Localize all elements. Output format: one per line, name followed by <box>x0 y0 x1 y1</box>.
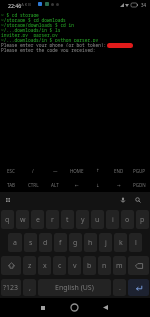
staticText: u <box>95 215 100 225</box>
staticText: / <box>32 168 34 174</box>
button[interactable]: Enter <box>128 279 149 296</box>
button[interactable]: x <box>38 256 51 275</box>
button[interactable]: — <box>44 163 66 178</box>
button[interactable]: n <box>98 256 111 275</box>
staticText: CTRL <box>28 182 39 188</box>
button[interactable]: y <box>76 210 89 229</box>
staticText: ~/...downloads/in $ ls <box>1 27 61 32</box>
staticText: x <box>43 261 47 271</box>
button[interactable]: t <box>61 210 74 229</box>
button[interactable]: Apps <box>3 195 13 205</box>
button[interactable]: ESC <box>0 163 22 178</box>
staticText: l <box>135 238 137 248</box>
staticText: ↑ <box>96 168 100 173</box>
staticText: r <box>51 215 54 225</box>
button[interactable]: ← <box>66 178 87 192</box>
staticText: Please enter the code you received: <box>1 47 96 52</box>
button[interactable]: PGDN <box>129 178 150 192</box>
button[interactable]: z <box>23 256 36 275</box>
button[interactable]: k <box>114 233 127 252</box>
staticText: g <box>73 238 78 248</box>
button[interactable]: END <box>108 163 129 178</box>
button[interactable]: Home <box>59 298 90 317</box>
staticText: h <box>88 238 93 248</box>
button[interactable]: , <box>23 279 36 296</box>
staticText: y <box>81 215 85 225</box>
button[interactable]: f <box>54 233 67 252</box>
staticText: TAB <box>7 182 15 188</box>
button[interactable]: b <box>83 256 96 275</box>
staticText: s <box>29 238 33 248</box>
button[interactable]: Voice input <box>118 195 128 205</box>
button[interactable]: Back <box>90 298 121 317</box>
button[interactable]: PGUP <box>129 163 150 178</box>
button[interactable]: CTRL <box>22 178 44 192</box>
staticText: inviter.py parser.py <box>1 32 58 37</box>
button[interactable]: ?123 <box>1 279 21 296</box>
button[interactable]: m <box>113 256 126 275</box>
staticText: f <box>59 238 62 248</box>
staticText: 34 <box>141 2 147 8</box>
button[interactable]: e <box>31 210 44 229</box>
staticText: t <box>66 215 69 225</box>
button[interactable]: c <box>53 256 66 275</box>
other: Enter <box>135 284 143 292</box>
button[interactable]: Backspace <box>128 256 149 275</box>
staticText: z <box>28 261 32 271</box>
button[interactable]: s <box>24 233 37 252</box>
staticText: v <box>73 261 77 271</box>
staticText: ~/storage $ cd downloads <box>1 17 66 22</box>
button[interactable]: . <box>113 279 126 296</box>
staticText: END <box>114 168 124 174</box>
button[interactable]: ↓ <box>87 178 108 192</box>
staticText: ↓ <box>96 183 100 188</box>
button[interactable]: Recents <box>27 298 59 317</box>
staticText: b <box>87 261 92 271</box>
staticText: ESC <box>7 168 15 174</box>
staticText: j <box>105 238 107 248</box>
button[interactable]: d <box>39 233 52 252</box>
staticText: , <box>29 283 31 293</box>
staticText: . <box>119 283 121 293</box>
button[interactable]: → <box>108 178 129 192</box>
staticText: → <box>117 183 121 188</box>
staticText: — <box>53 168 58 174</box>
button[interactable]: g <box>69 233 82 252</box>
staticText: m <box>116 261 123 271</box>
other: Backspace <box>135 262 143 270</box>
staticText: a <box>13 238 17 248</box>
staticText: ← <box>75 183 79 188</box>
button[interactable]: ↑ <box>87 163 108 178</box>
staticText: n <box>102 261 107 271</box>
button[interactable]: English (US) <box>38 279 111 296</box>
button[interactable]: r <box>46 210 59 229</box>
button[interactable]: w <box>16 210 29 229</box>
staticText: q <box>5 215 10 225</box>
staticText: ~/storage/downloads $ cd in <box>1 22 74 27</box>
button[interactable]: / <box>22 163 44 178</box>
button[interactable]: q <box>1 210 14 229</box>
button[interactable]: Shift <box>1 256 21 275</box>
button[interactable]: ALT <box>44 178 66 192</box>
button[interactable]: p <box>136 210 149 229</box>
staticText: ?123 <box>3 283 19 293</box>
staticText: PGDN <box>133 182 146 188</box>
button[interactable]: TAB <box>0 178 22 192</box>
staticText: k <box>119 238 123 248</box>
staticText: ALT <box>51 182 59 188</box>
button[interactable]: a <box>8 233 22 252</box>
button[interactable]: l <box>129 233 142 252</box>
button[interactable]: h <box>84 233 97 252</box>
staticText: HOME <box>70 168 84 174</box>
staticText: English (US) <box>55 283 94 293</box>
button[interactable]: v <box>68 256 81 275</box>
button[interactable]: u <box>91 210 104 229</box>
staticText: o <box>125 215 130 225</box>
button[interactable]: o <box>121 210 134 229</box>
button[interactable]: Search <box>133 195 143 205</box>
button[interactable]: HOME <box>66 163 87 178</box>
button[interactable]: j <box>99 233 112 252</box>
staticText: 22:46 <box>8 2 22 9</box>
button[interactable]: i <box>106 210 119 229</box>
staticText: c <box>58 261 62 271</box>
